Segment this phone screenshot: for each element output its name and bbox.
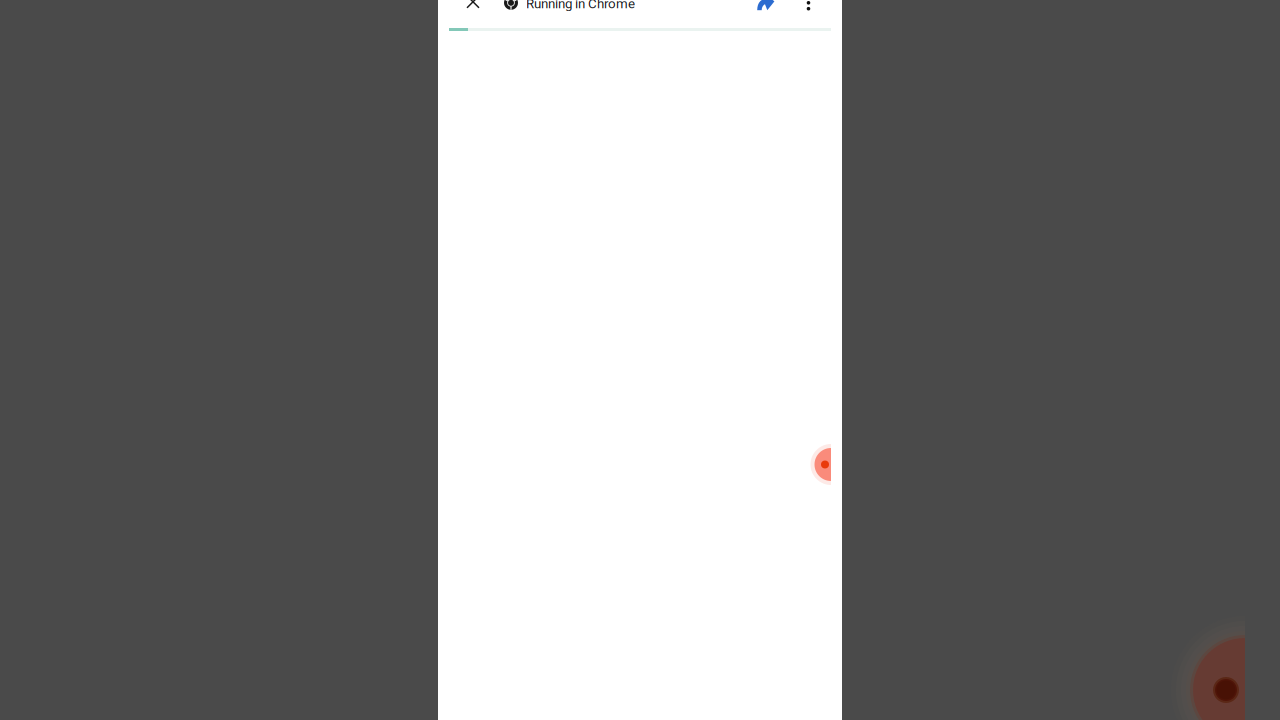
staticText: Running in Chrome bbox=[526, 0, 635, 11]
button[interactable]: More options bbox=[795, 0, 822, 15]
button[interactable]: Share bbox=[755, 0, 795, 15]
button[interactable]: Close tab bbox=[461, 0, 485, 15]
